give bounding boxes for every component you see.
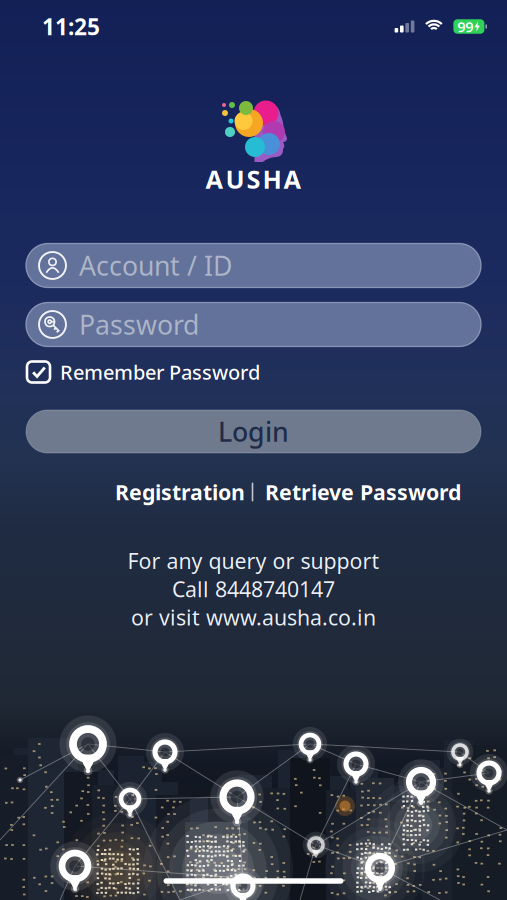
button[interactable]: Registration (115, 478, 245, 506)
staticText: Registration (115, 478, 245, 506)
staticText: For any query or support (127, 546, 379, 575)
button[interactable]: Remember Password (27, 359, 480, 385)
staticText: or visit www.ausha.co.in (131, 603, 376, 631)
button[interactable]: Password (26, 302, 481, 346)
button[interactable]: Account / ID (26, 243, 481, 287)
staticText: Retrieve Password (265, 478, 461, 506)
staticText: AUSHA (205, 162, 301, 196)
staticText: 99 (457, 17, 473, 36)
staticText: 11:25 (42, 11, 100, 41)
staticText: Password (79, 307, 199, 342)
button[interactable]: Retrieve Password (265, 478, 461, 506)
staticText: Login (218, 414, 289, 449)
button[interactable]: Login (26, 410, 481, 453)
staticText: Remember Password (60, 359, 260, 385)
staticText: Account / ID (79, 248, 232, 283)
staticText: Call 8448740147 (172, 575, 335, 603)
